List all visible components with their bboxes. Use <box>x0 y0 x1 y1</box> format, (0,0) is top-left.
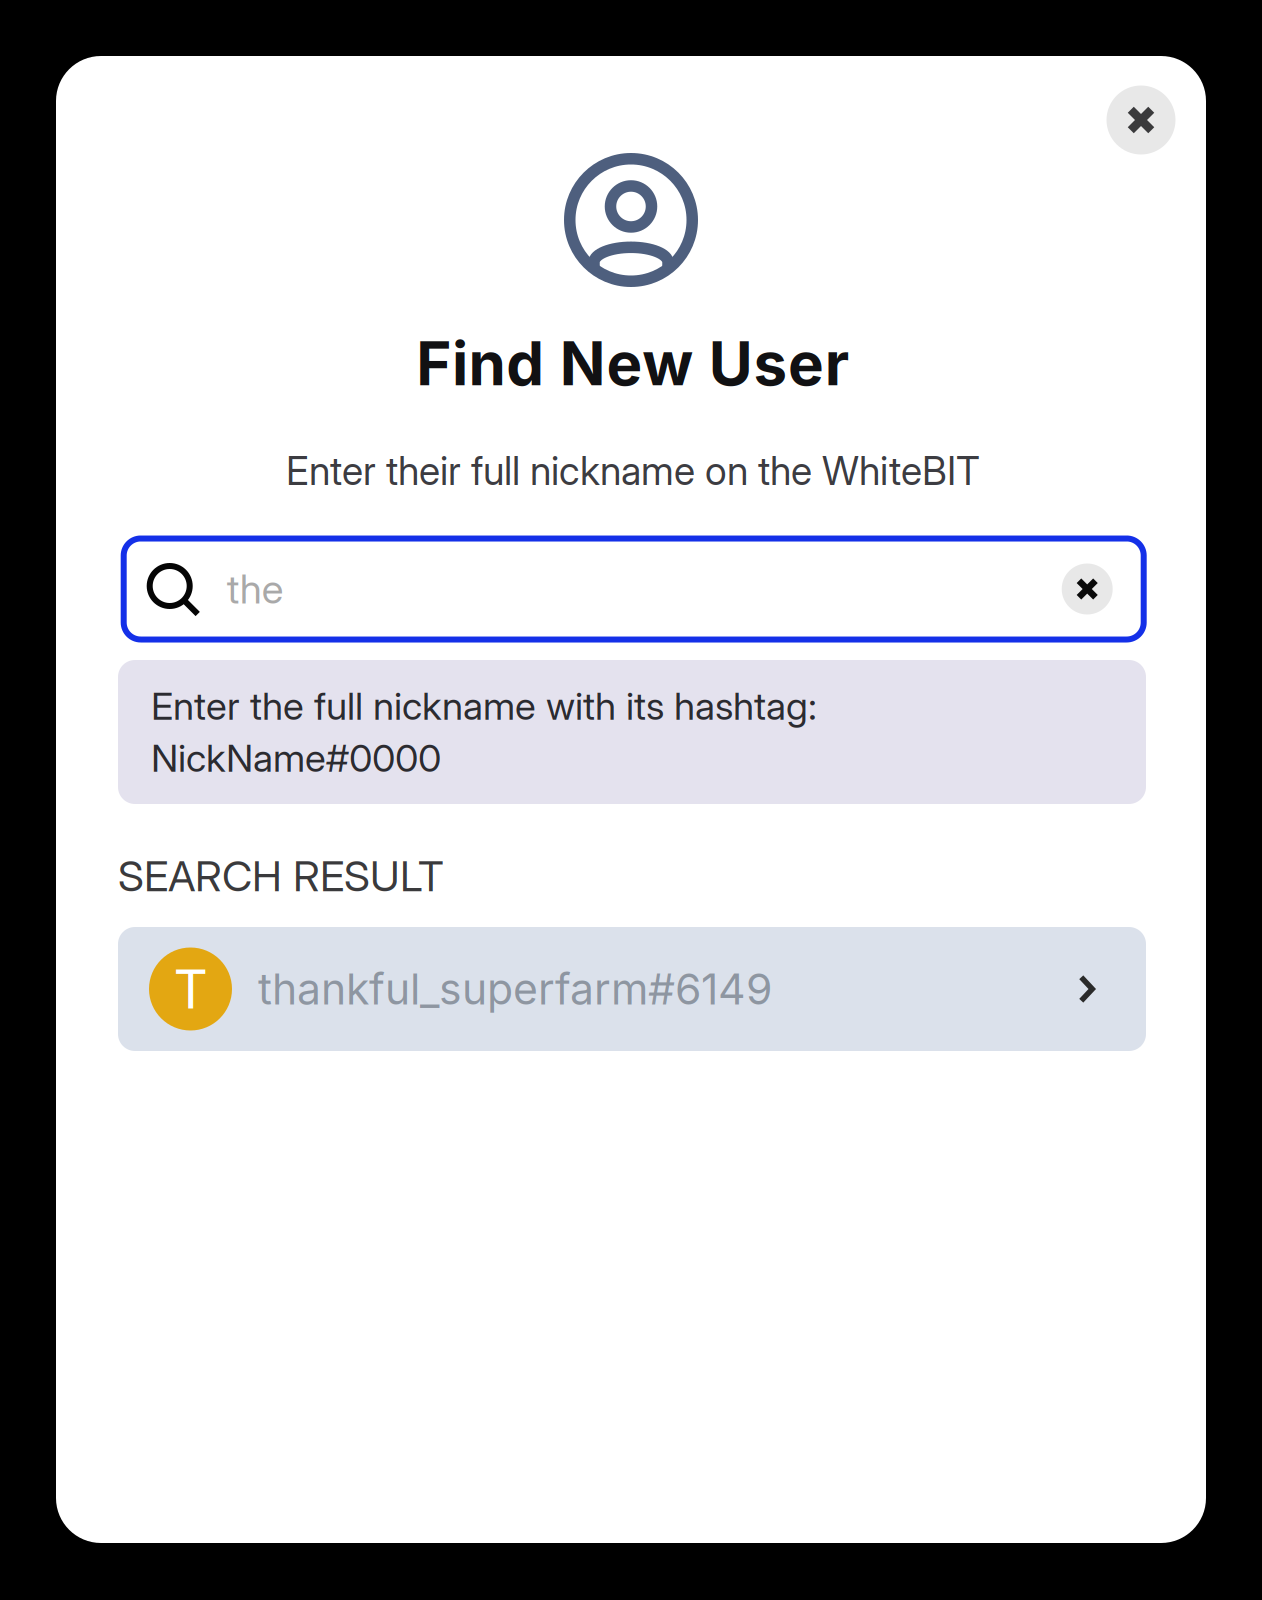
staticText: Enter the full nickname with its hashtag… <box>151 683 817 729</box>
staticText: T <box>173 957 207 1021</box>
button[interactable]: Close <box>1106 85 1175 154</box>
button[interactable]: Clear text <box>1062 563 1113 614</box>
staticText: Find New User <box>416 327 849 400</box>
button[interactable]: T <box>118 927 1146 1051</box>
staticText: thankful_superfarm#6149 <box>258 963 772 1015</box>
staticText: Enter their full nickname on the WhiteBI… <box>286 448 980 494</box>
button[interactable]: Search nickname <box>124 538 1144 639</box>
staticText: NickName#0000 <box>151 735 441 781</box>
staticText: SEARCH RESULT <box>118 851 444 901</box>
staticText: the <box>227 565 284 613</box>
